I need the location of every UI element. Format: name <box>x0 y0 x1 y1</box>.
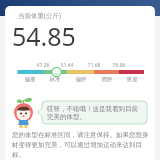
staticText: 肥胖 <box>95 76 119 83</box>
staticText: 47.26 <box>31 62 55 69</box>
staticText: 重度 <box>120 76 144 83</box>
staticText: 71.68 <box>82 62 106 69</box>
staticText: 54.85 <box>12 19 76 53</box>
staticText: 您的体型在标准区间，请注意保持。如果您想身材变得更加完美，可以通过增加运动来达到… <box>12 131 152 159</box>
staticText: 标准 <box>43 76 67 83</box>
staticText: 偏瘦 <box>18 76 42 83</box>
staticText: 当前体重(公斤) <box>18 11 61 20</box>
staticText: 76.86 <box>107 62 131 69</box>
staticText: 51.44 <box>55 62 79 69</box>
staticText: 哎呀，不错哦！这是我看到目前完美的体型。 <box>47 105 144 121</box>
staticText: 偏胖 <box>69 76 93 83</box>
